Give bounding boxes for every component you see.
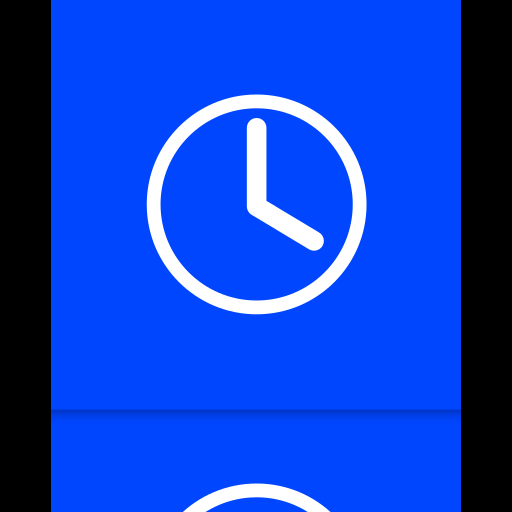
button[interactable]: Clock xyxy=(0,0,512,512)
